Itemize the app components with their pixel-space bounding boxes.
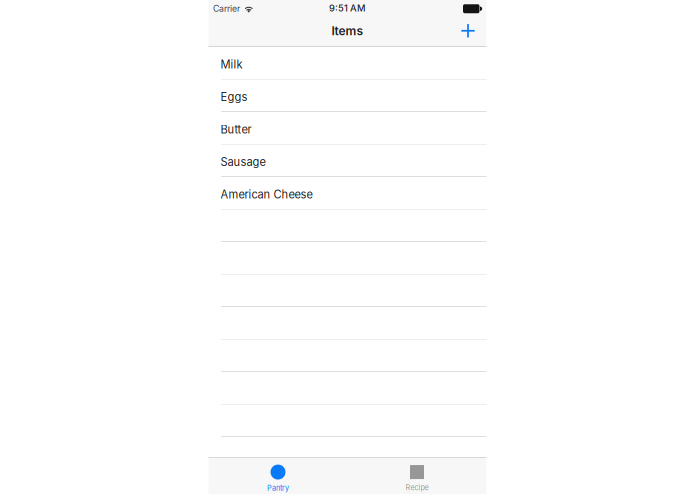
staticText: Sausage	[220, 155, 265, 169]
staticText: Recipe	[405, 483, 428, 492]
button[interactable]: Eggs	[208, 79, 486, 112]
staticText: Carrier	[213, 3, 240, 14]
staticText: Eggs	[220, 90, 247, 104]
staticText: Butter	[220, 123, 251, 136]
staticText: Pantry	[267, 484, 289, 492]
staticText: Items	[331, 24, 363, 38]
button[interactable]: Milk	[208, 47, 486, 79]
staticText: 9:51 AM	[329, 2, 366, 14]
button[interactable]: Add item	[456, 20, 480, 46]
button[interactable]: American Cheese	[208, 177, 486, 209]
button[interactable]: Pantry	[208, 458, 347, 494]
staticText: American Cheese	[220, 188, 312, 201]
staticText: Milk	[220, 58, 242, 71]
button[interactable]: Recipe	[347, 458, 486, 494]
button[interactable]: Sausage	[208, 144, 486, 177]
button[interactable]: Butter	[208, 112, 486, 144]
